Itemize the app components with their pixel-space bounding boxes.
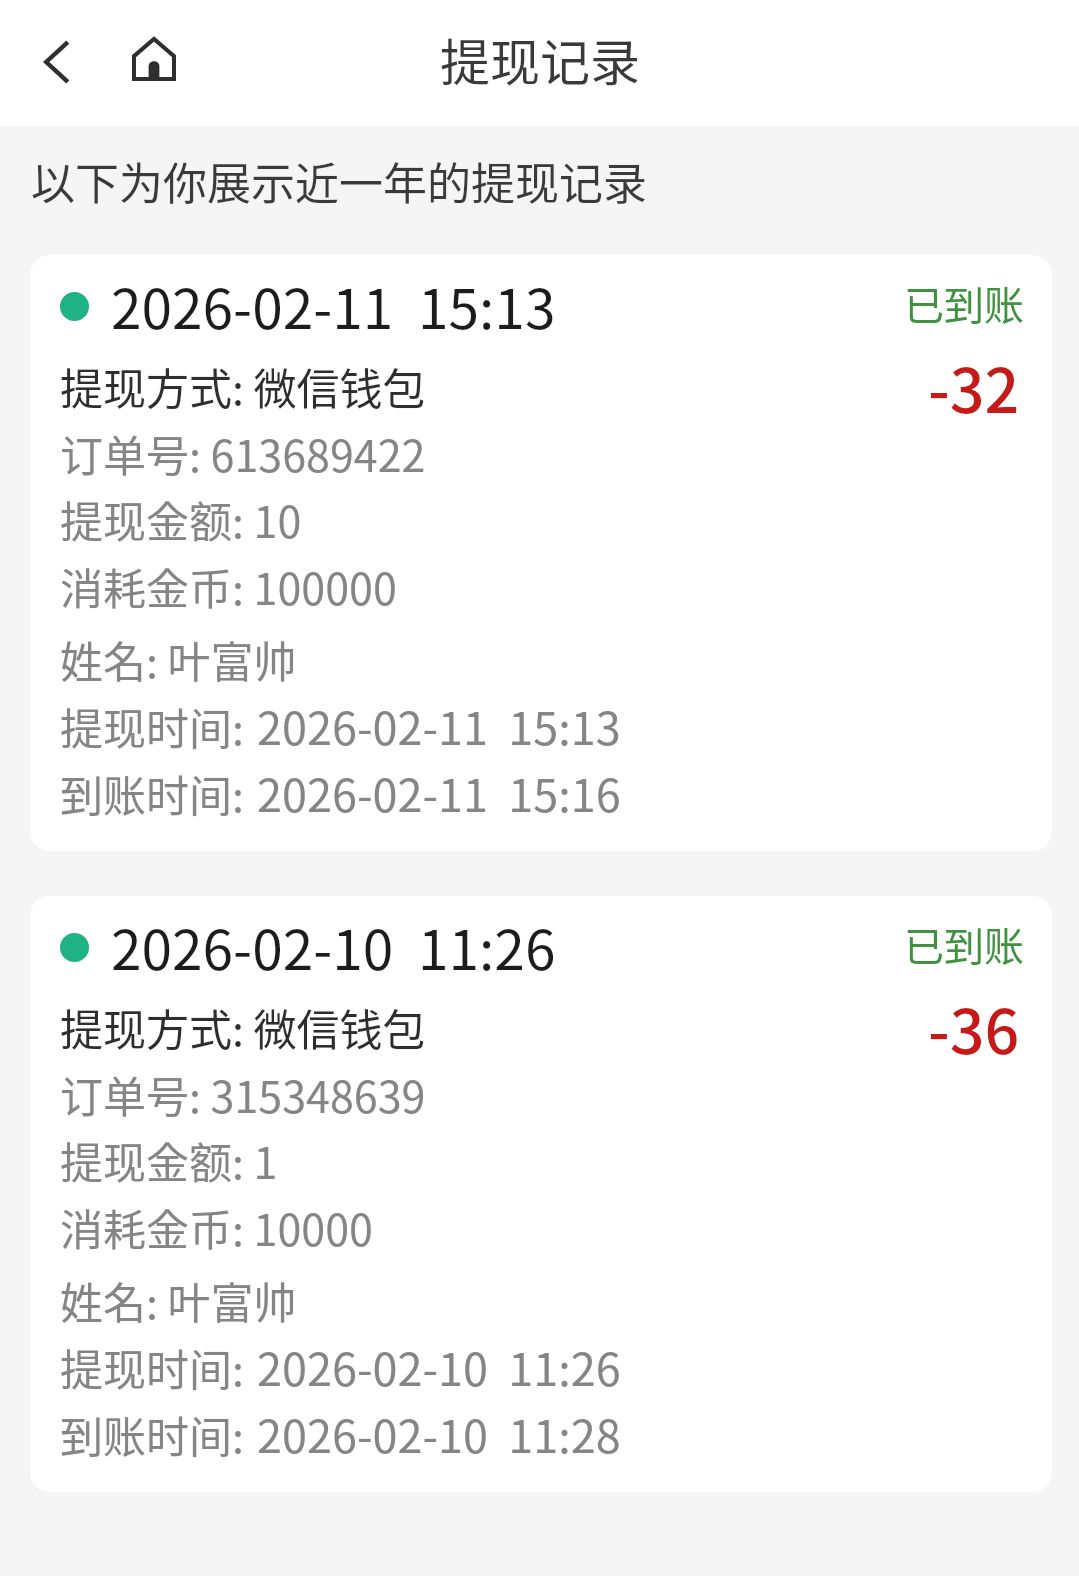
- button[interactable]: Back: [18, 18, 96, 106]
- staticText: 到账时间:: [60, 758, 244, 825]
- staticText: 姓名: 叶富帅: [60, 624, 297, 691]
- staticText: 2026-02-11 15:13: [257, 691, 621, 758]
- staticText: 2026-02-10 11:26: [257, 1332, 621, 1399]
- staticText: 提现方式: 微信钱包: [60, 351, 426, 418]
- staticText: 提现记录: [440, 33, 640, 93]
- staticText: 消耗金币: 100000: [60, 551, 397, 618]
- staticText: 提现金额: 10: [60, 484, 302, 551]
- staticText: -36: [928, 1000, 1020, 1067]
- staticText: 已到账: [904, 269, 1024, 333]
- staticText: 到账时间:: [60, 1399, 244, 1466]
- staticText: 已到账: [904, 910, 1024, 974]
- staticText: 2026-02-10 11:26: [111, 919, 556, 983]
- staticText: 提现方式: 微信钱包: [60, 992, 426, 1059]
- staticText: 2026-02-11 15:13: [111, 278, 556, 342]
- staticText: 提现时间:: [60, 1332, 244, 1399]
- staticText: 以下为你展示近一年的提现记录: [31, 149, 647, 213]
- staticText: 提现金额: 1: [60, 1125, 278, 1192]
- staticText: 姓名: 叶富帅: [60, 1265, 297, 1332]
- staticText: 消耗金币: 10000: [60, 1192, 373, 1259]
- staticText: 2026-02-11 15:16: [257, 758, 621, 825]
- staticText: 2026-02-10 11:28: [257, 1399, 621, 1466]
- staticText: 订单号: 613689422: [60, 418, 426, 485]
- button[interactable]: 2026-02-11 15:13: [30, 255, 1052, 851]
- staticText: 提现时间:: [60, 691, 244, 758]
- staticText: 订单号: 315348639: [60, 1059, 426, 1126]
- staticText: -32: [928, 359, 1020, 426]
- button[interactable]: Home: [113, 15, 195, 103]
- button[interactable]: 2026-02-10 11:26: [30, 896, 1052, 1492]
